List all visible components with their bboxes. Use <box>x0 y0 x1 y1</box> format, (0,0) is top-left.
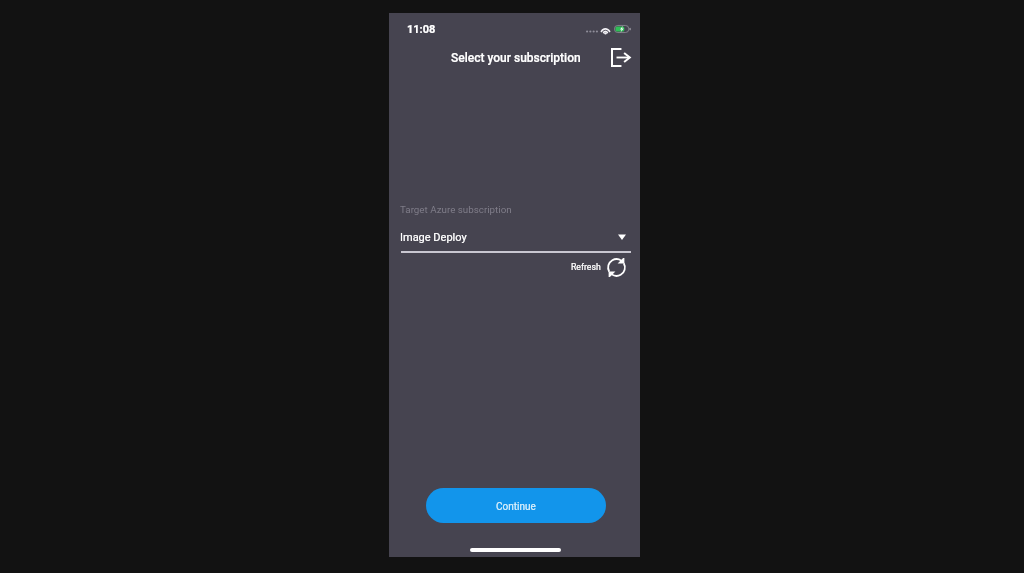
button[interactable]: Refresh <box>571 256 627 278</box>
staticText: Refresh <box>571 262 601 272</box>
staticText: Target Azure subscription <box>400 204 512 215</box>
staticText: Continue <box>496 501 536 513</box>
staticText: Select your subscription <box>451 51 581 65</box>
button[interactable]: Target Azure subscription <box>400 201 631 255</box>
button[interactable]: Log out <box>606 43 634 71</box>
staticText: Image Deploy <box>400 231 467 244</box>
staticText: 11:08 <box>407 23 436 36</box>
button[interactable]: Continue <box>426 488 606 523</box>
